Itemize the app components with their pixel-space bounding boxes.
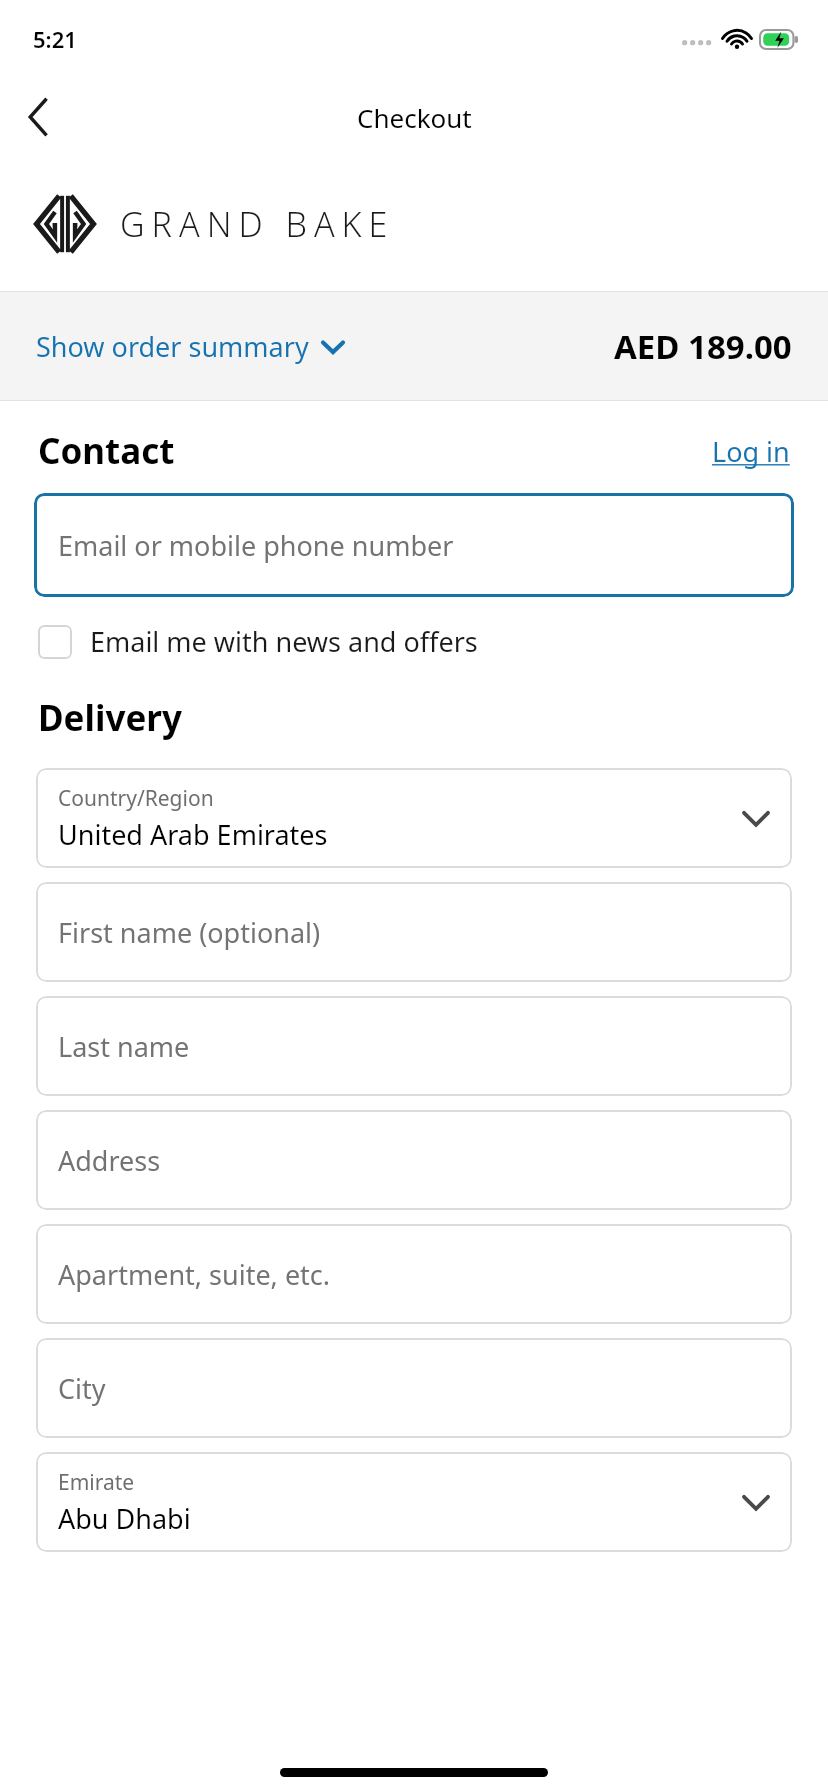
staticText: 5:21 [33,24,77,54]
button[interactable]: Email or mobile phone number [34,493,794,597]
staticText: Country/Region [58,784,214,813]
button[interactable]: Log in [712,433,790,470]
staticText: GRAND BAKE [120,201,395,247]
staticText: United Arab Emirates [58,816,328,853]
staticText: AED 189.00 [614,324,792,369]
staticText: Address [58,1142,161,1179]
button[interactable]: Emirate [36,1452,792,1552]
button[interactable]: Email me with news and offers [34,619,482,664]
button[interactable]: City [36,1338,792,1438]
button[interactable]: Back [12,90,66,144]
staticText: Last name [58,1028,190,1065]
staticText: City [58,1370,106,1407]
button[interactable]: Country/Region [36,768,792,868]
staticText: Email or mobile phone number [58,527,454,564]
button[interactable]: First name (optional) [36,882,792,982]
staticText: Apartment, suite, etc. [58,1256,331,1293]
staticText: First name (optional) [58,914,321,951]
button[interactable]: Apartment, suite, etc. [36,1224,792,1324]
staticText: Email me with news and offers [90,623,478,660]
staticText: Show order summary [36,328,309,365]
other: Open Country/Region selector [744,811,768,826]
staticText: Contact [38,427,175,475]
staticText: Abu Dhabi [58,1500,191,1537]
staticText: Emirate [58,1468,135,1497]
staticText: Delivery [38,694,182,742]
button[interactable]: Address [36,1110,792,1210]
other: Open Emirate selector [744,1495,768,1510]
button[interactable]: Last name [36,996,792,1096]
staticText: Log in [712,433,790,470]
button[interactable]: Show order summary [0,292,828,400]
staticText: Checkout [357,100,472,135]
